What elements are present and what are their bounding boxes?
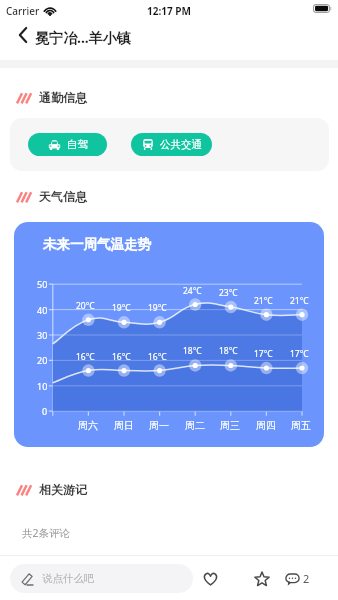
- staticText: 周五: [291, 419, 311, 432]
- staticText: 自驾: [67, 138, 88, 151]
- button[interactable]: 通勤信息: [16, 90, 87, 105]
- button[interactable]: Like: [202, 566, 219, 591]
- staticText: 周四: [256, 419, 276, 432]
- staticText: 通勤信息: [39, 90, 87, 105]
- staticText: 19°C: [148, 302, 167, 314]
- staticText: 2: [303, 571, 310, 586]
- staticText: 18°C: [183, 345, 202, 357]
- staticText: 40: [37, 304, 48, 316]
- button[interactable]: Favorite: [253, 566, 270, 591]
- staticText: 24°C: [183, 285, 202, 297]
- button[interactable]: 相关游记: [16, 482, 87, 497]
- staticText: 20°C: [76, 300, 95, 312]
- button[interactable]: 公共交通: [131, 133, 212, 156]
- staticText: 23°C: [219, 287, 238, 299]
- staticText: 21°C: [254, 295, 273, 307]
- staticText: 16°C: [76, 351, 95, 363]
- staticText: Carrier: [6, 4, 40, 18]
- button[interactable]: 天气信息: [16, 189, 87, 204]
- staticText: 30: [37, 329, 48, 341]
- button[interactable]: 自驾: [28, 133, 107, 156]
- staticText: 16°C: [112, 351, 131, 363]
- staticText: 21°C: [290, 295, 309, 307]
- staticText: 周三: [220, 419, 240, 432]
- staticText: 公共交通: [160, 138, 202, 151]
- staticText: 16°C: [148, 351, 167, 363]
- staticText: 12:17 PM: [147, 4, 191, 18]
- staticText: 周一: [149, 419, 169, 432]
- staticText: 冕宁冶...羊小镇: [35, 28, 131, 47]
- staticText: 0: [42, 405, 48, 417]
- staticText: 18°C: [219, 345, 238, 357]
- button[interactable]: 说点什么吧: [10, 564, 193, 593]
- staticText: 17°C: [254, 348, 273, 360]
- button[interactable]: 2: [285, 566, 310, 591]
- staticText: 17°C: [290, 348, 309, 360]
- staticText: 说点什么吧: [42, 572, 95, 585]
- staticText: 周二: [185, 419, 205, 432]
- staticText: 20: [37, 354, 48, 366]
- staticText: 19°C: [112, 302, 131, 314]
- staticText: 天气信息: [39, 189, 87, 204]
- staticText: 10: [37, 380, 48, 392]
- staticText: 相关游记: [39, 482, 87, 497]
- staticText: 50: [37, 278, 48, 290]
- button[interactable]: Back: [10, 23, 36, 47]
- staticText: 周六: [78, 419, 98, 432]
- staticText: 周日: [114, 419, 134, 432]
- staticText: 未来一周气温走势: [43, 236, 151, 253]
- staticText: 共2条评论: [22, 526, 71, 540]
